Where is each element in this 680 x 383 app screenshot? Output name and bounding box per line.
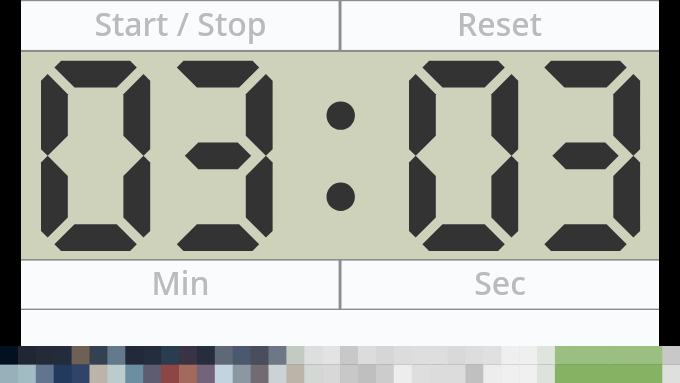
button[interactable]: Sec [340,259,659,310]
button[interactable]: Start / Stop [21,0,340,52]
staticText: Start / Stop [94,2,267,46]
staticText: Sec [474,261,526,305]
button[interactable]: Min [21,259,340,310]
button[interactable]: Reset [340,0,659,52]
staticText: Min [151,261,210,305]
staticText: Reset [457,2,542,46]
